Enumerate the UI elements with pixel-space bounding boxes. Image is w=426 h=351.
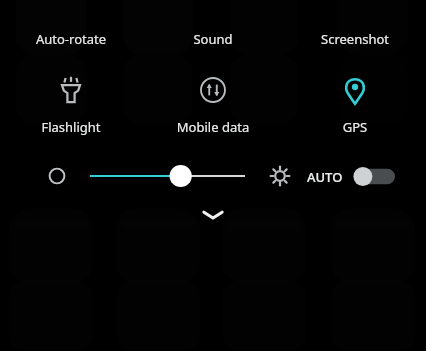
- staticText: Screenshot: [284, 30, 426, 48]
- button[interactable]: Auto-rotate: [0, 0, 142, 50]
- button[interactable]: Sound: [142, 0, 284, 50]
- button[interactable]: Screenshot: [284, 0, 426, 50]
- button[interactable]: Brightness settings: [267, 163, 293, 189]
- staticText: Mobile data: [142, 118, 284, 136]
- staticText: GPS: [284, 118, 426, 136]
- other: GPS: [340, 75, 370, 105]
- staticText: Sound: [142, 30, 284, 48]
- other: Mobile data: [198, 75, 228, 105]
- button[interactable]: Expand quick settings: [0, 202, 426, 228]
- button[interactable]: Brightness: [90, 161, 245, 191]
- button[interactable]: Mobile data: [142, 62, 284, 140]
- other: Flashlight: [56, 75, 86, 105]
- button[interactable]: Flashlight: [0, 62, 142, 140]
- staticText: Flashlight: [0, 118, 142, 136]
- button[interactable]: GPS: [284, 62, 426, 140]
- button[interactable]: AUTO: [305, 163, 397, 190]
- staticText: AUTO: [307, 168, 343, 186]
- staticText: Auto-rotate: [0, 30, 142, 48]
- button[interactable]: Minimum brightness: [44, 163, 70, 189]
